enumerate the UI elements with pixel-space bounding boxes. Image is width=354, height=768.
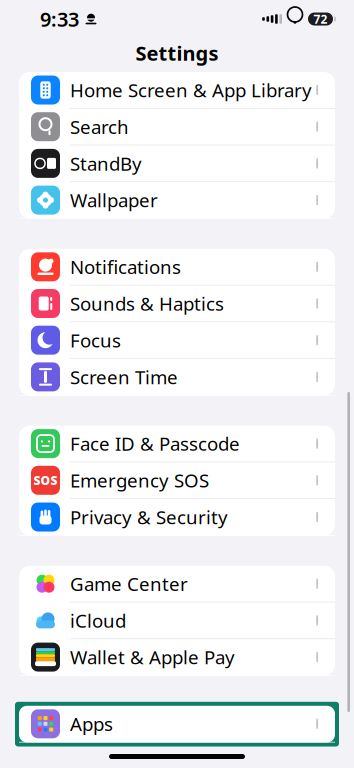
- staticText: Screen Time: [70, 364, 178, 389]
- staticText: Wallpaper: [70, 188, 158, 212]
- staticText: 9:33: [40, 6, 79, 32]
- button[interactable]: Search: [19, 109, 335, 145]
- staticText: Game Center: [70, 571, 188, 596]
- button[interactable]: SOS: [19, 462, 335, 499]
- button[interactable]: StandBy: [19, 145, 335, 182]
- button[interactable]: Notifications: [19, 249, 335, 285]
- button[interactable]: Face ID & Passcode: [19, 426, 335, 462]
- staticText: Wallet & Apple Pay: [70, 645, 235, 669]
- staticText: Search: [70, 114, 129, 139]
- staticText: Apps: [70, 711, 113, 736]
- button[interactable]: Screen Time: [19, 359, 335, 396]
- staticText: iCloud: [70, 608, 126, 633]
- staticText: 72: [313, 11, 327, 27]
- staticText: Notifications: [70, 254, 181, 279]
- button[interactable]: Focus: [19, 322, 335, 359]
- staticText: Home Screen & App Library: [70, 78, 312, 102]
- staticText: StandBy: [70, 151, 142, 176]
- button[interactable]: iCloud: [19, 602, 335, 639]
- staticText: Face ID & Passcode: [70, 431, 240, 456]
- staticText: Emergency SOS: [70, 468, 209, 493]
- button[interactable]: Wallet & Apple Pay: [19, 639, 335, 676]
- button[interactable]: Home Screen & App Library: [19, 72, 335, 109]
- staticText: Focus: [70, 328, 121, 353]
- button[interactable]: Sounds & Haptics: [19, 285, 335, 322]
- staticText: Sounds & Haptics: [70, 291, 224, 316]
- button[interactable]: Privacy & Security: [19, 499, 335, 536]
- staticText: Privacy & Security: [70, 505, 228, 529]
- button[interactable]: Apps: [19, 706, 335, 742]
- staticText: Settings: [135, 40, 218, 66]
- button[interactable]: Game Center: [19, 566, 335, 602]
- button[interactable]: Wallpaper: [19, 182, 335, 219]
- staticText: SOS: [33, 472, 57, 488]
